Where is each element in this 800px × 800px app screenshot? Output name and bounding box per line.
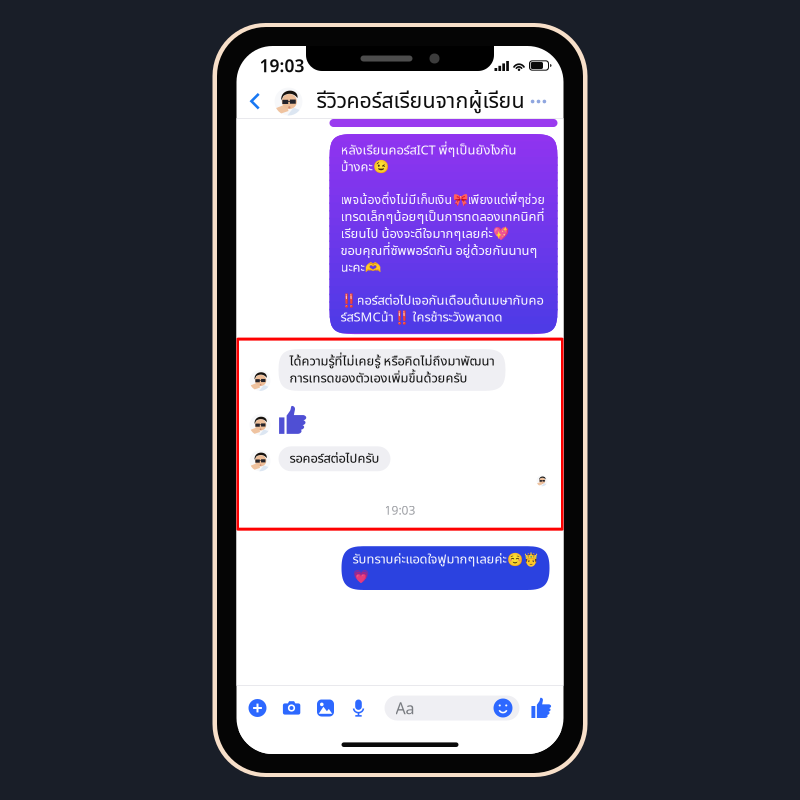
staticText: ขอบคุณที่ซัพพอร์ตกัน อยู่ด้วยกันนานๆ <box>340 241 537 261</box>
button[interactable]: Photos <box>308 690 342 726</box>
staticText: 19:03 <box>259 54 304 77</box>
button[interactable]: Camera <box>274 690 308 726</box>
button[interactable]: Send like <box>529 693 553 723</box>
staticText: รอคอร์สต่อไปครับ <box>289 449 379 468</box>
staticText: หลังเรียนคอร์สICT พี่ๆเป็นยังไงกัน <box>340 141 516 160</box>
staticText: ได้ความรู้ที่ไม่เคยรู้ หรือคิดไม่ถึงมาพั… <box>289 352 494 371</box>
staticText: รับทราบค่ะแอดใจฟูมากๆเลยค่ะ☺️🤴 <box>352 550 538 569</box>
staticText: บ้างคะ😉 <box>340 158 388 177</box>
staticText: Aa <box>395 697 414 719</box>
button[interactable]: Add <box>240 690 274 726</box>
staticText: รีวิวคอร์สเรียนจากผู้เรียน <box>316 85 524 118</box>
staticText: เพจน้องตึ่งไม่มีเก็บเงิน🎀เพียงแต่พี่ๆช่ว… <box>340 191 544 209</box>
staticText: ร์สSMCน้า‼️ ใครช้าระวังพลาดด <box>340 308 502 327</box>
button[interactable]: รีวิวคอร์สเรียนจากผู้เรียน <box>274 85 524 118</box>
staticText: 💗 <box>352 569 368 584</box>
staticText: นะคะ🫶 <box>340 258 380 278</box>
staticText: การเทรดของตัวเองเพิ่มขึ้นด้วยครับ <box>289 369 467 388</box>
button[interactable]: Back <box>242 85 267 117</box>
button[interactable]: More options <box>529 86 547 116</box>
button[interactable]: Message field <box>384 695 519 720</box>
staticText: เรียนไป น้องจะดีใจมากๆเลยค่ะ💖 <box>340 224 508 244</box>
staticText: เทรดเล็กๆน้อยๆเป็นการทดลองเทคนิคที่ <box>340 207 544 227</box>
button[interactable]: Voice message <box>342 690 374 726</box>
staticText: ‼️คอร์สต่อไปเจอกันเดือนต้นเมษากับคอ <box>340 291 543 310</box>
staticText: 19:03 <box>384 502 415 518</box>
